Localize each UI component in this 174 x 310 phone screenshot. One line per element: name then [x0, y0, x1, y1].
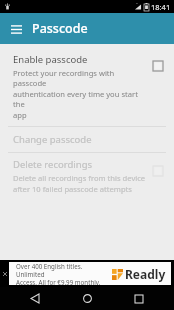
staticText: Delete recordings [13, 158, 93, 171]
button[interactable]: Delete recordings [0, 153, 174, 200]
staticText: after 10 failed passcode attempts [13, 184, 132, 194]
staticText: authentication every time you start the [13, 89, 146, 109]
button[interactable]: Back [18, 287, 52, 310]
staticText: Access. All for €9.99 monthly. [16, 278, 101, 285]
staticText: Passcode [32, 20, 88, 37]
staticText: app [13, 110, 27, 120]
staticText: Change passcode [13, 133, 92, 146]
staticText: Protect your recordings with passcode [13, 68, 146, 88]
button[interactable]: Recent apps [122, 287, 156, 310]
button[interactable]: Change passcode [0, 127, 174, 152]
button[interactable]: Delete recordings (disabled) [150, 163, 166, 179]
staticText: Readly [125, 266, 166, 282]
staticText: Delete all recordings from this device [13, 173, 146, 183]
button[interactable]: Home [70, 287, 104, 310]
button[interactable]: Close ad [0, 260, 9, 287]
staticText: Enable passcode [13, 53, 88, 66]
button[interactable]: Toggle Enable passcode [150, 58, 166, 74]
button[interactable]: Open navigation drawer [6, 19, 26, 39]
button[interactable]: Enable passcode [0, 48, 174, 126]
staticText: Over 400 English titles. Unlimited [16, 262, 112, 278]
staticText: 18:41 [151, 2, 171, 12]
button[interactable]: Over 400 English titles. Unlimited [9, 262, 171, 285]
